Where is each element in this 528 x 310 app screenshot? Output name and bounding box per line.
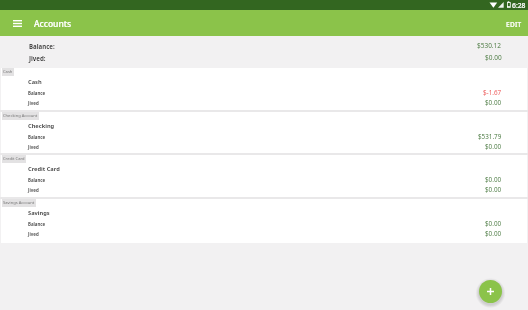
staticText: $530.12	[477, 41, 502, 50]
staticText: $0.00	[485, 185, 502, 194]
staticText: Balance	[28, 90, 46, 96]
staticText: Jived	[28, 187, 39, 193]
staticText: Credit Card	[28, 165, 60, 173]
staticText: Savings Account	[3, 200, 35, 206]
staticText: EDIT	[506, 20, 522, 29]
staticText: Checking Account	[3, 113, 38, 119]
staticText: Checking	[28, 122, 55, 130]
staticText: Credit Card	[3, 156, 25, 162]
button[interactable]: Add account	[479, 280, 502, 303]
staticText: $0.00	[485, 175, 502, 184]
button[interactable]: Checking Account	[1, 112, 527, 153]
staticText: $0.00	[485, 53, 502, 62]
staticText: 6:28	[512, 1, 526, 10]
staticText: Balance	[28, 177, 46, 183]
staticText: Cash	[3, 69, 13, 75]
staticText: $0.00	[485, 229, 502, 238]
staticText: $-1.67	[483, 88, 502, 97]
staticText: Jived	[28, 100, 39, 106]
staticText: $0.00	[485, 98, 502, 107]
staticText: Jived:	[29, 54, 46, 62]
staticText: Jived	[28, 144, 39, 150]
staticText: Savings	[28, 209, 50, 217]
button[interactable]: EDIT	[500, 15, 528, 34]
staticText: $0.00	[485, 142, 502, 151]
staticText: Balance:	[29, 42, 55, 50]
staticText: Accounts	[34, 18, 72, 30]
staticText: Balance	[28, 134, 46, 140]
button[interactable]: Open navigation drawer	[9, 15, 26, 32]
staticText: $0.00	[485, 219, 502, 228]
button[interactable]: Savings Account	[1, 199, 527, 243]
button[interactable]: Cash	[1, 68, 527, 110]
staticText: Cash	[28, 78, 42, 86]
staticText: Balance	[28, 221, 46, 227]
staticText: $531.79	[478, 132, 502, 141]
staticText: Jived	[28, 231, 39, 237]
button[interactable]: Credit Card	[1, 155, 527, 197]
